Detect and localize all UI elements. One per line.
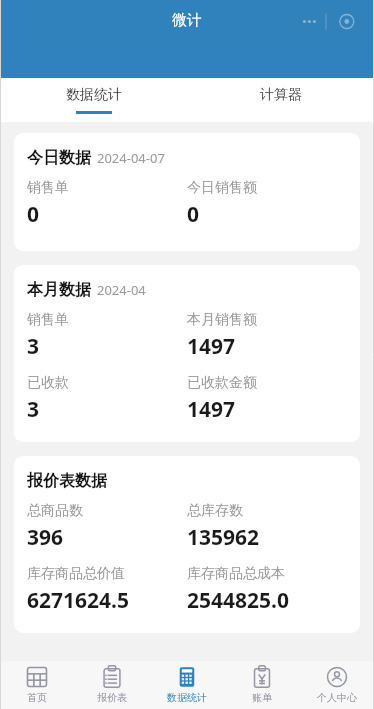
staticText: 总商品数 bbox=[27, 502, 83, 520]
staticText: 1497 bbox=[187, 395, 236, 424]
staticText: 0 bbox=[27, 200, 40, 229]
staticText: 3 bbox=[27, 395, 40, 424]
staticText: 2024-04 bbox=[97, 281, 146, 299]
staticText: 2544825.0 bbox=[187, 586, 289, 615]
staticText: 0 bbox=[187, 200, 200, 229]
staticText: 总库存数 bbox=[187, 502, 243, 520]
staticText: 1497 bbox=[187, 332, 236, 361]
button[interactable]: 账单 bbox=[224, 661, 299, 709]
staticText: 135962 bbox=[187, 523, 260, 552]
button[interactable]: 数据统计 bbox=[149, 661, 224, 709]
button[interactable]: 计算器 bbox=[187, 78, 374, 122]
staticText: 本月销售额 bbox=[187, 311, 257, 329]
staticText: 已收款 bbox=[27, 374, 69, 392]
staticText: 本月数据 bbox=[27, 280, 91, 300]
button[interactable]: 数据统计 bbox=[0, 78, 187, 122]
staticText: 销售单 bbox=[27, 311, 69, 329]
staticText: 数据统计 bbox=[167, 691, 207, 704]
button[interactable]: 报价表数据 bbox=[14, 456, 360, 633]
staticText: 计算器 bbox=[260, 86, 302, 104]
staticText: 报价表 bbox=[97, 691, 127, 704]
staticText: 报价表数据 bbox=[27, 471, 107, 491]
button[interactable]: 本月数据 bbox=[14, 265, 360, 442]
staticText: 6271624.5 bbox=[27, 586, 129, 615]
staticText: 个人中心 bbox=[317, 691, 357, 704]
button[interactable]: 个人中心 bbox=[299, 661, 374, 709]
staticText: 库存商品总价值 bbox=[27, 565, 125, 583]
staticText: 账单 bbox=[252, 691, 272, 704]
staticText: 2024-04-07 bbox=[97, 149, 165, 167]
staticText: 今日销售额 bbox=[187, 179, 257, 197]
staticText: 已收款金额 bbox=[187, 374, 257, 392]
staticText: 今日数据 bbox=[27, 148, 91, 168]
button[interactable]: 今日数据 bbox=[14, 133, 360, 251]
staticText: 首页 bbox=[27, 691, 47, 704]
staticText: 微计 bbox=[172, 11, 202, 30]
staticText: 库存商品总成本 bbox=[187, 565, 285, 583]
staticText: 销售单 bbox=[27, 179, 69, 197]
staticText: 数据统计 bbox=[66, 86, 122, 104]
button[interactable]: 报价表 bbox=[74, 661, 149, 709]
staticText: 3 bbox=[27, 332, 40, 361]
button[interactable]: 首页 bbox=[0, 661, 74, 709]
staticText: 396 bbox=[27, 523, 64, 552]
